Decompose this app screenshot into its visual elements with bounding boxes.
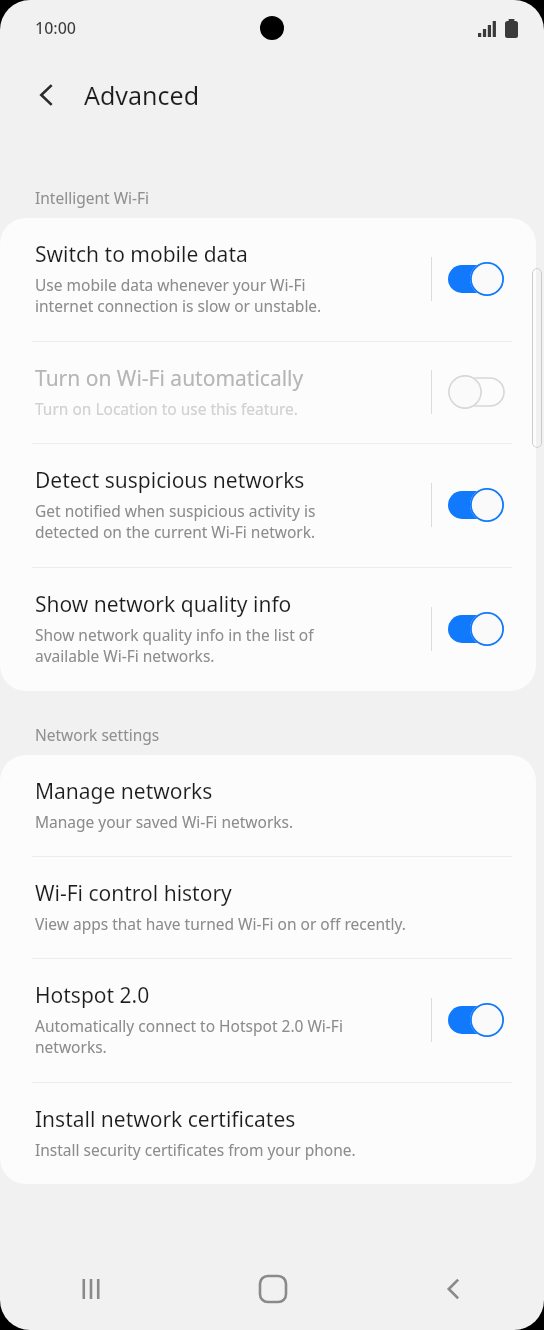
staticText: Install network certificates [35, 1105, 296, 1134]
staticText: Manage networks [35, 777, 213, 806]
button[interactable]: Switch to mobile data [432, 252, 520, 306]
button[interactable]: Home [182, 1248, 363, 1330]
staticText: Intelligent Wi-Fi [35, 187, 150, 208]
button[interactable]: Detect suspicious networks [0, 444, 536, 567]
button[interactable]: Manage networks [0, 755, 536, 856]
staticText: Advanced [84, 78, 200, 112]
staticText: Turn on Wi-Fi automatically [35, 364, 304, 393]
staticText: View apps that have turned Wi-Fi on or o… [35, 913, 407, 934]
staticText: Switch to mobile data [35, 240, 248, 269]
staticText: Show network quality info in the list of… [35, 624, 314, 667]
staticText: Turn on Location to use this feature. [35, 398, 298, 419]
staticText: Hotspot 2.0 [35, 981, 150, 1010]
button[interactable]: Show network quality info [432, 602, 520, 656]
staticText: Network settings [35, 724, 160, 745]
staticText: Wi-Fi control history [35, 879, 232, 908]
button[interactable]: Wi-Fi control history [0, 857, 536, 958]
staticText: 10:00 [35, 17, 76, 39]
staticText: Detect suspicious networks [35, 466, 305, 495]
button[interactable]: Back [363, 1248, 544, 1330]
button[interactable]: Hotspot 2.0 [432, 993, 520, 1047]
staticText: Show network quality info [35, 590, 292, 619]
button[interactable]: Install network certificates [0, 1083, 536, 1184]
button[interactable]: Recents [0, 1248, 182, 1330]
button[interactable]: Detect suspicious networks [432, 478, 520, 532]
button[interactable]: Turn on Wi-Fi automatically [0, 342, 536, 443]
button[interactable]: Back [18, 66, 76, 124]
staticText: Install security certificates from your … [35, 1139, 356, 1160]
staticText: Get notified when suspicious activity is… [35, 500, 316, 543]
button[interactable]: Switch to mobile data [0, 218, 536, 341]
button[interactable]: Turn on Wi-Fi automatically [432, 365, 520, 419]
staticText: Automatically connect to Hotspot 2.0 Wi-… [35, 1015, 343, 1058]
staticText: Manage your saved Wi-Fi networks. [35, 811, 294, 832]
button[interactable]: Hotspot 2.0 [0, 959, 536, 1082]
staticText: Use mobile data whenever your Wi-Fi inte… [35, 274, 322, 317]
button[interactable]: Show network quality info [0, 568, 536, 691]
